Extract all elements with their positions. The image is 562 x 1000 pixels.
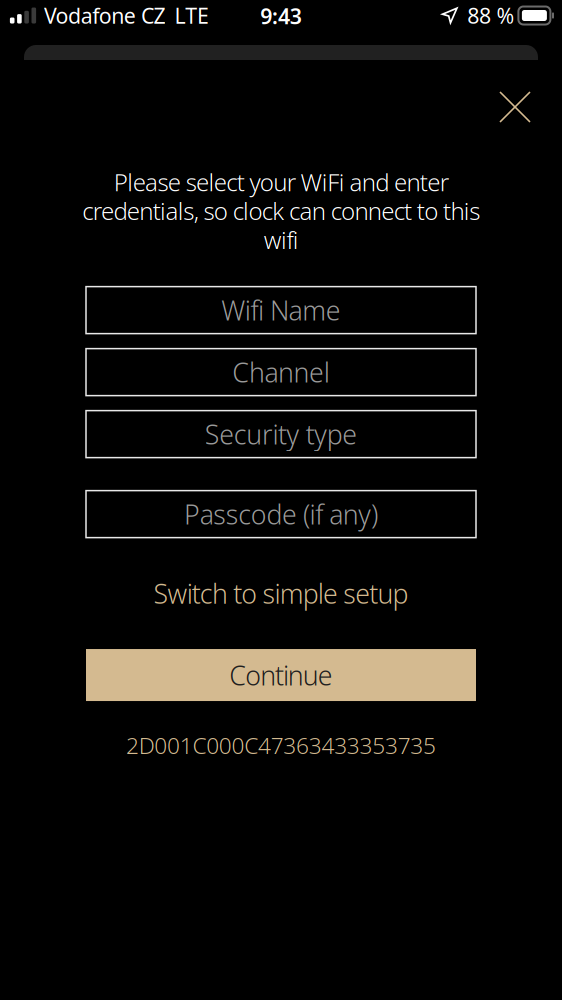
- button[interactable]: Switch to simple setup: [141, 570, 421, 617]
- button[interactable]: Close: [488, 80, 542, 134]
- button[interactable]: Security type: [86, 411, 476, 458]
- staticText: 9:43: [260, 2, 302, 30]
- staticText: 88 %: [467, 1, 514, 30]
- staticText: Continue: [229, 657, 333, 693]
- button[interactable]: Passcode (if any): [86, 491, 476, 538]
- staticText: Passcode (if any): [184, 496, 378, 532]
- staticText: Wifi Name: [221, 292, 341, 328]
- button[interactable]: Wifi Name: [86, 287, 476, 334]
- button[interactable]: Channel: [86, 349, 476, 396]
- staticText: Vodafone CZ: [44, 1, 165, 30]
- staticText: Channel: [232, 354, 330, 390]
- staticText: Security type: [205, 416, 357, 452]
- staticText: Please select your WiFi and enter creden…: [82, 166, 480, 256]
- staticText: 2D001C000C47363433353735: [126, 730, 436, 760]
- staticText: Switch to simple setup: [153, 576, 409, 611]
- staticText: LTE: [174, 1, 209, 30]
- button[interactable]: Continue: [86, 649, 476, 701]
